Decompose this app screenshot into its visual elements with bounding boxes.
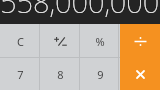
staticText: C xyxy=(17,34,24,49)
staticText: % xyxy=(95,34,105,49)
button[interactable]: Plus or minus xyxy=(40,24,80,58)
button[interactable]: Multiply xyxy=(120,58,160,90)
button[interactable]: C xyxy=(0,24,40,58)
button[interactable]: Divide xyxy=(120,24,160,58)
staticText: 558,000,000 xyxy=(0,0,160,21)
staticText: 7 xyxy=(17,67,24,82)
staticText: 8 xyxy=(57,67,64,82)
button[interactable]: 9 xyxy=(80,58,120,90)
button[interactable]: % xyxy=(80,24,120,58)
staticText: 9 xyxy=(97,67,104,82)
button[interactable]: 8 xyxy=(40,58,80,90)
button[interactable]: 7 xyxy=(0,58,40,90)
